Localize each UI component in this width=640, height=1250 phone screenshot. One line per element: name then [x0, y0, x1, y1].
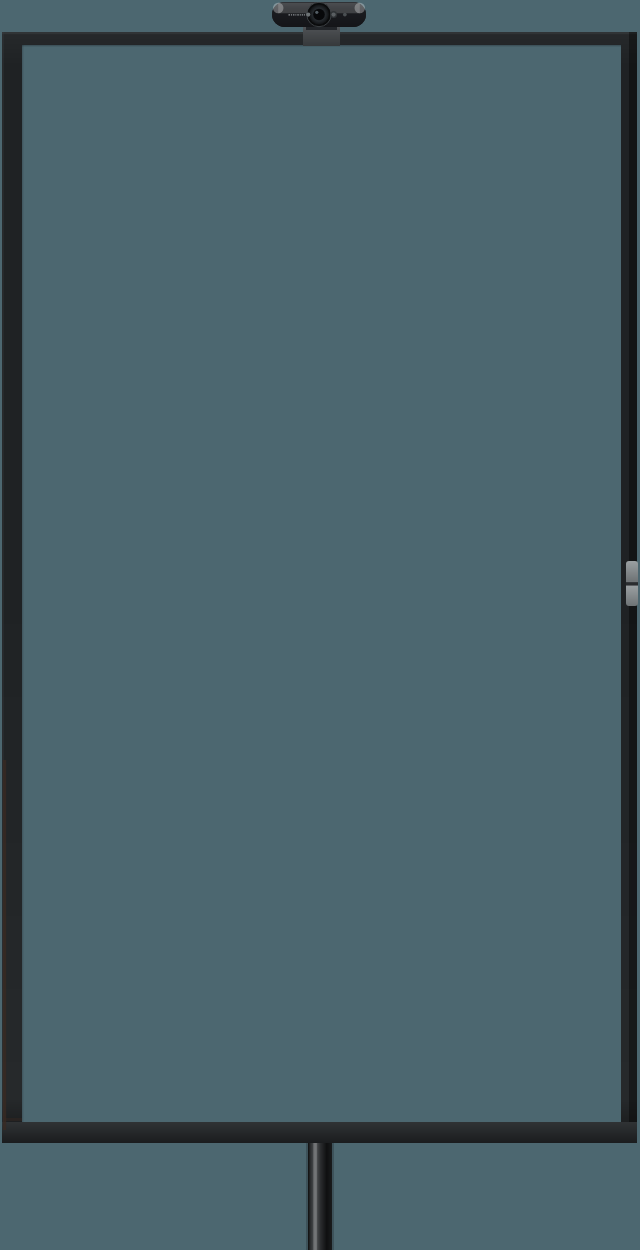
other: Monitor with webcam, blank screen: [0, 0, 640, 1250]
other: Display panel: [0, 0, 640, 1250]
